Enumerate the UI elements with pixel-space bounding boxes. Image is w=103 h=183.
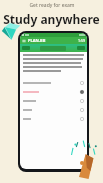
button[interactable]: Menu	[20, 37, 87, 44]
button[interactable]	[20, 114, 87, 123]
button[interactable]	[20, 78, 87, 87]
staticText: Study anywhere	[3, 11, 100, 27]
other: Tap	[70, 139, 100, 179]
other: Menu	[22, 39, 26, 43]
button[interactable]	[77, 46, 85, 50]
staticText: Get ready for exam	[29, 2, 75, 9]
staticText: PLAN-BB	[28, 38, 46, 43]
staticText: 1:59	[78, 38, 85, 43]
button[interactable]	[20, 105, 87, 114]
other: Gem	[1, 21, 22, 41]
button[interactable]	[20, 87, 87, 96]
button[interactable]	[22, 46, 30, 50]
button[interactable]	[20, 96, 87, 105]
